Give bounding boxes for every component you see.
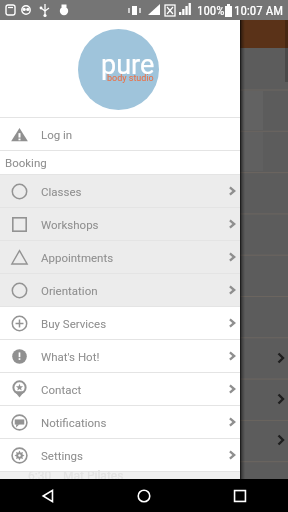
button[interactable]: Log in bbox=[0, 118, 240, 150]
button[interactable]: Home bbox=[96, 479, 192, 512]
button[interactable]: Appointments bbox=[0, 241, 240, 273]
button[interactable]: What's Hot! bbox=[0, 340, 240, 372]
staticText: Workshops bbox=[41, 218, 99, 231]
staticText: Settings bbox=[41, 449, 83, 462]
button[interactable]: Contact bbox=[0, 373, 240, 405]
staticText: Classes bbox=[41, 185, 82, 198]
button[interactable]: Buy Services bbox=[0, 307, 240, 339]
staticText: body studio bbox=[107, 73, 154, 84]
staticText: Contact bbox=[41, 383, 82, 396]
button[interactable]: Classes bbox=[0, 175, 240, 207]
button[interactable]: Orientation bbox=[0, 274, 240, 306]
staticText: Appointments bbox=[41, 251, 114, 264]
staticText: Notifications bbox=[41, 416, 107, 429]
staticText: 10:07 AM bbox=[234, 3, 284, 18]
staticText: Booking bbox=[5, 156, 47, 169]
staticText: Log in bbox=[41, 128, 73, 141]
button[interactable]: Recent apps bbox=[192, 479, 288, 512]
button[interactable]: Back bbox=[0, 479, 96, 512]
staticText: What's Hot! bbox=[41, 350, 100, 363]
staticText: Orientation bbox=[41, 284, 98, 297]
staticText: 100% bbox=[197, 3, 225, 18]
button[interactable]: Notifications bbox=[0, 406, 240, 438]
button[interactable]: Settings bbox=[0, 439, 240, 471]
button[interactable]: Workshops bbox=[0, 208, 240, 240]
staticText: 6:30 Mat Pilates bbox=[28, 469, 124, 483]
staticText: Buy Services bbox=[41, 317, 107, 330]
staticText: pure bbox=[101, 49, 155, 81]
